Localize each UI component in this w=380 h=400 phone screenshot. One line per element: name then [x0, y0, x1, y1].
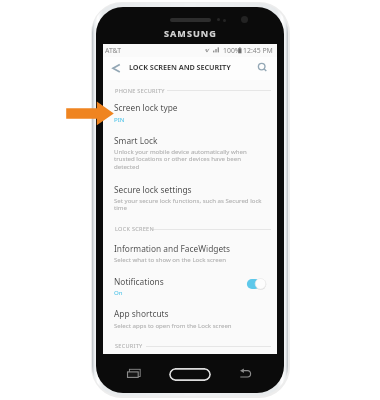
staticText: 100%: [223, 46, 241, 55]
staticText: Unlock your mobile device automatically …: [114, 147, 262, 171]
button[interactable]: Back: [239, 368, 253, 380]
staticText: PIN: [114, 115, 262, 123]
button[interactable]: [103, 274, 277, 298]
staticText: On: [114, 288, 262, 296]
staticText: SECURITY: [115, 342, 143, 350]
button[interactable]: Navigate up: [105, 57, 127, 80]
staticText: Screen lock type: [114, 102, 178, 113]
button[interactable]: Search: [251, 57, 273, 80]
staticText: AT&T: [105, 46, 122, 55]
staticText: Select apps to open from the Lock screen: [114, 321, 262, 329]
staticText: LOCK SCREEN: [115, 225, 154, 233]
button[interactable]: [103, 182, 277, 214]
staticText: Set your secure lock functions, such as …: [114, 196, 262, 212]
staticText: PHONE SECURITY: [115, 87, 165, 95]
button[interactable]: Home: [169, 368, 211, 381]
staticText: Select what to show on the Lock screen: [114, 255, 262, 263]
staticText: LOCK SCREEN AND SECURITY: [129, 62, 231, 72]
button[interactable]: [103, 133, 277, 173]
button[interactable]: [103, 241, 277, 265]
button[interactable]: [103, 100, 277, 124]
staticText: Smart Lock: [114, 135, 158, 146]
staticText: Secure lock settings: [114, 184, 192, 195]
staticText: Information and FaceWidgets: [114, 243, 231, 254]
staticText: SAMSUNG: [164, 27, 217, 39]
staticText: 12:45 PM: [243, 46, 273, 55]
button[interactable]: Notifications on: [245, 276, 267, 290]
button[interactable]: [103, 307, 277, 331]
button[interactable]: Recents: [125, 367, 142, 380]
staticText: App shortcuts: [114, 308, 169, 319]
staticText: Notifications: [114, 276, 164, 287]
